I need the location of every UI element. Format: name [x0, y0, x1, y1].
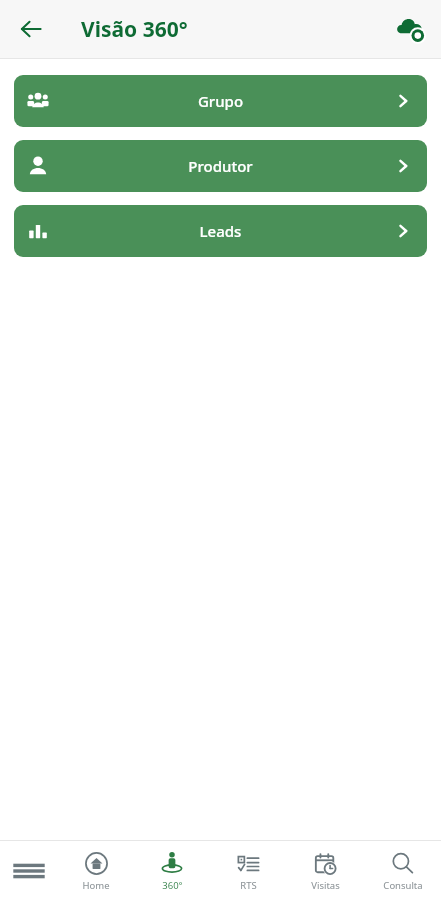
staticText: 360°	[162, 879, 183, 892]
staticText: Visão 360°	[81, 15, 188, 44]
staticText: Visitas	[311, 879, 340, 892]
button[interactable]: Visitas	[287, 841, 364, 900]
staticText: Leads	[62, 221, 379, 241]
button[interactable]: 360°	[134, 841, 210, 900]
button[interactable]: Produtor	[14, 140, 427, 192]
button[interactable]: Grupo	[14, 75, 427, 127]
staticText: Produtor	[62, 156, 379, 176]
button[interactable]: Consulta	[364, 841, 441, 900]
button[interactable]: Home	[58, 841, 134, 900]
button[interactable]: Sync data	[389, 8, 431, 50]
staticText: Consulta	[383, 879, 423, 892]
button[interactable]: Leads	[14, 205, 427, 257]
staticText: RTS	[240, 879, 257, 892]
staticText: Home	[82, 879, 110, 892]
button[interactable]: Back	[10, 8, 52, 50]
button[interactable]: Menu	[0, 841, 58, 900]
button[interactable]: RTS	[210, 841, 287, 900]
staticText: Grupo	[62, 91, 379, 111]
